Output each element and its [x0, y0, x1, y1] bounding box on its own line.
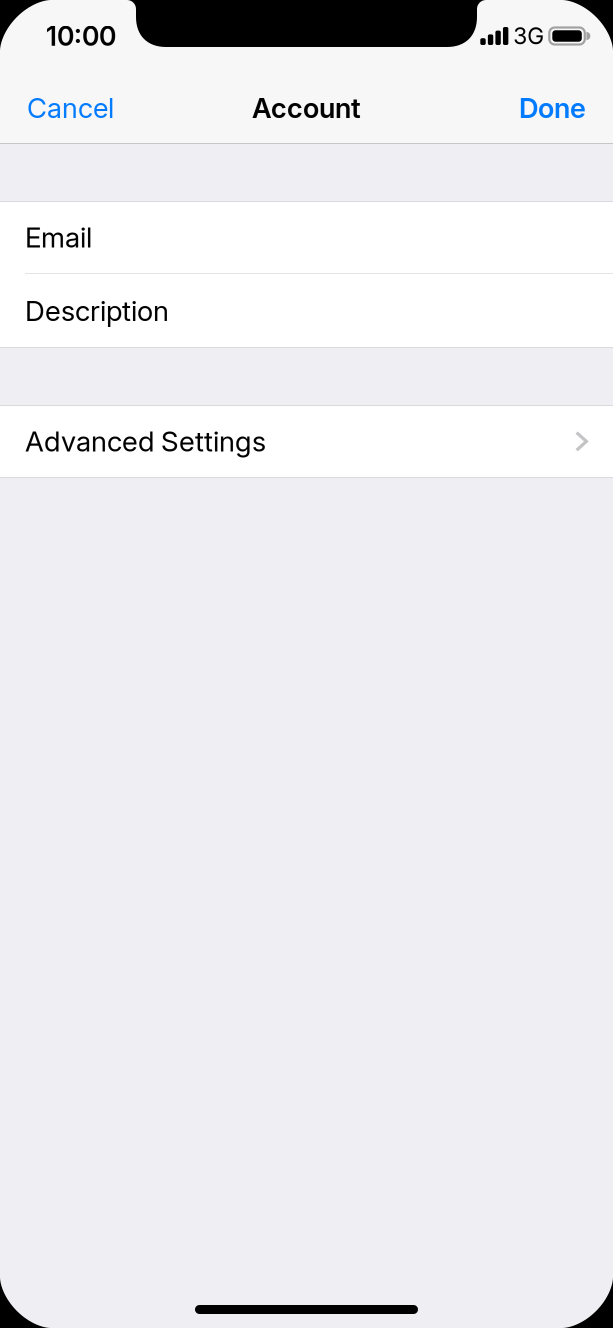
staticText: Cancel: [27, 91, 114, 125]
button[interactable]: Email: [0, 201, 613, 274]
staticText: Done: [519, 91, 586, 125]
staticText: Account: [252, 91, 361, 125]
staticText: 3G: [513, 22, 544, 50]
button[interactable]: Description: [0, 274, 613, 348]
staticText: Email: [25, 221, 92, 254]
button[interactable]: Cancel: [0, 72, 134, 144]
button[interactable]: Advanced Settings: [0, 405, 613, 478]
staticText: Description: [25, 294, 169, 328]
button[interactable]: Done: [499, 72, 613, 144]
staticText: 10:00: [46, 20, 116, 52]
staticText: Advanced Settings: [25, 425, 266, 458]
